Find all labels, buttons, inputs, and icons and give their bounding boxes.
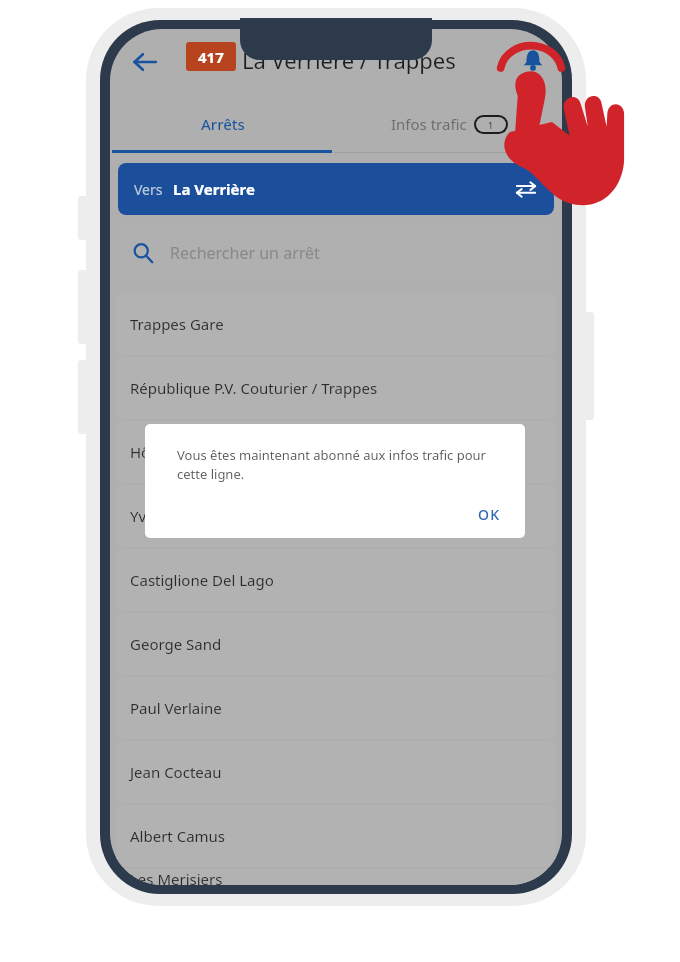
button[interactable]: Rechercher un arrêt xyxy=(118,227,554,279)
button[interactable]: Castiglione Del Lago xyxy=(116,549,556,611)
button[interactable]: Albert Camus xyxy=(116,805,556,867)
button[interactable]: République P.V. Couturier / Trappes xyxy=(116,357,556,419)
staticText: Trappes Gare xyxy=(130,314,224,334)
staticText: George Sand xyxy=(130,634,222,654)
button[interactable]: Notifications xyxy=(508,35,558,85)
button[interactable]: George Sand xyxy=(116,613,556,675)
button[interactable]: Infos trafic xyxy=(336,95,562,153)
staticText: République P.V. Couturier / Trappes xyxy=(130,378,378,398)
button[interactable]: Jean Cocteau xyxy=(116,741,556,803)
button[interactable]: Paul Verlaine xyxy=(116,677,556,739)
staticText: 1 xyxy=(488,119,494,131)
staticText: Castiglione Del Lago xyxy=(130,570,274,590)
staticText: Jean Cocteau xyxy=(130,762,222,782)
staticText: Les Merisiers xyxy=(130,869,223,885)
staticText: Hôpital xyxy=(130,442,181,462)
button[interactable]: Hôpital xyxy=(116,421,556,483)
button[interactable]: Trappes Gare xyxy=(116,293,556,355)
button[interactable]: 417 xyxy=(186,42,236,71)
staticText: Paul Verlaine xyxy=(130,698,222,718)
button[interactable]: Arrêts xyxy=(110,95,336,153)
staticText: La Verrière xyxy=(173,179,255,199)
button[interactable]: Les Merisiers xyxy=(116,869,556,885)
staticText: Yvette xyxy=(130,506,174,526)
staticText: 417 xyxy=(198,47,224,67)
button[interactable]: Vers xyxy=(118,163,554,215)
button[interactable]: Back xyxy=(118,35,172,89)
button[interactable]: OK xyxy=(462,495,517,534)
staticText: Rechercher un arrêt xyxy=(170,242,320,264)
staticText: Arrêts xyxy=(201,114,245,134)
staticText: Vous êtes maintenant abonné aux infos tr… xyxy=(177,446,499,483)
other: Tap indicator xyxy=(496,42,636,222)
staticText: Albert Camus xyxy=(130,826,226,846)
button[interactable]: Yvette xyxy=(116,485,556,547)
staticText: Vers xyxy=(134,180,163,199)
staticText: La Verrière / Trappes xyxy=(242,45,456,75)
staticText: Infos trafic xyxy=(391,114,467,134)
staticText: OK xyxy=(478,505,501,524)
